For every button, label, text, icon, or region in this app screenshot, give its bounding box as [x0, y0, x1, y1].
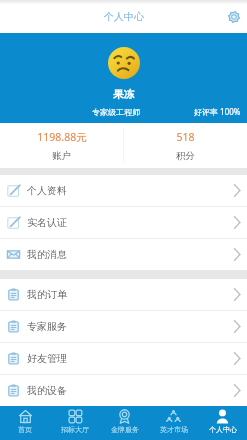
- button[interactable]: 个人资料: [0, 175, 247, 206]
- button[interactable]: 招标大厅: [50, 406, 100, 440]
- staticText: 我的消息: [27, 248, 67, 261]
- button[interactable]: 我的消息: [0, 239, 247, 270]
- button[interactable]: 我的订单: [0, 279, 247, 310]
- button[interactable]: 个人中心: [198, 406, 247, 440]
- button[interactable]: 1198.88元: [0, 123, 123, 168]
- staticText: 我的设备: [27, 384, 67, 397]
- button[interactable]: 首页: [0, 406, 50, 440]
- staticText: 首页: [18, 425, 32, 434]
- staticText: 果冻: [113, 88, 134, 101]
- staticText: 金牌服务: [111, 425, 139, 434]
- staticText: 专家级工程师: [92, 107, 140, 117]
- staticText: 英才市场: [160, 425, 188, 434]
- staticText: 招标大厅: [61, 425, 89, 434]
- button[interactable]: 好友管理: [0, 343, 247, 374]
- button[interactable]: 518: [123, 123, 247, 168]
- staticText: 积分: [176, 150, 195, 162]
- button[interactable]: 我的设备: [0, 375, 247, 406]
- staticText: 好评率 100%: [194, 106, 241, 117]
- button[interactable]: 专家服务: [0, 311, 247, 342]
- staticText: 1198.88元: [37, 130, 87, 144]
- staticText: 实名认证: [27, 216, 67, 229]
- button[interactable]: 英才市场: [149, 406, 198, 440]
- staticText: 我的订单: [27, 288, 67, 301]
- staticText: 518: [176, 130, 195, 144]
- button[interactable]: 金牌服务: [100, 406, 149, 440]
- staticText: 个人中心: [104, 10, 144, 23]
- staticText: 专家服务: [27, 320, 67, 333]
- staticText: 个人资料: [27, 184, 67, 197]
- staticText: 个人中心: [209, 425, 237, 434]
- button[interactable]: 实名认证: [0, 207, 247, 238]
- staticText: 好友管理: [27, 352, 67, 365]
- button[interactable]: Settings: [224, 7, 244, 27]
- staticText: 账户: [52, 150, 71, 162]
